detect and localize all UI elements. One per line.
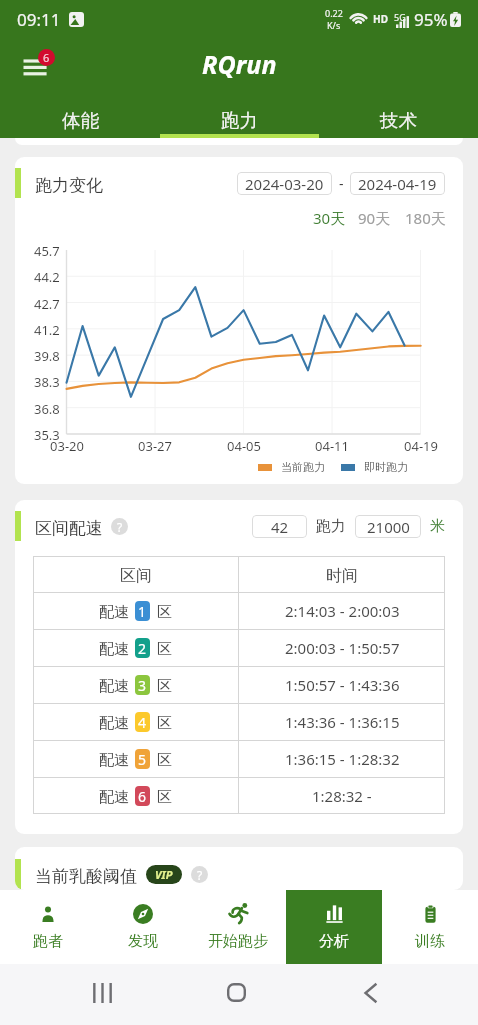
button[interactable]: 开始跑步 — [190, 890, 286, 964]
staticText: 2:00:03 - 1:50:57 — [285, 638, 400, 658]
staticText: 1:28:32 - — [312, 786, 372, 806]
staticText: 区 — [157, 751, 172, 770]
button[interactable]: 21000 — [355, 515, 421, 538]
staticText: - — [339, 174, 344, 193]
staticText: 1:36:15 - 1:28:32 — [285, 749, 400, 769]
button[interactable]: Menu — [14, 48, 60, 88]
staticText: 1:50:57 - 1:43:36 — [285, 675, 400, 695]
staticText: 米 — [430, 517, 445, 536]
staticText: 配速 — [99, 603, 129, 622]
button[interactable]: 跑力 — [160, 97, 319, 138]
button[interactable]: 技术 — [319, 97, 478, 138]
staticText: 当前乳酸阈值 — [35, 866, 137, 887]
staticText: 2024-03-20 — [245, 174, 324, 194]
button[interactable]: 42 — [252, 515, 307, 538]
staticText: 95% — [414, 8, 448, 31]
staticText: 4 — [138, 713, 147, 732]
staticText: 1 — [138, 602, 147, 621]
button[interactable]: 配速 — [33, 630, 445, 666]
staticText: 区间配速 — [35, 518, 103, 539]
staticText: 配速 — [99, 714, 129, 733]
button[interactable]: 发现 — [95, 890, 190, 964]
staticText: 2:14:03 - 2:00:03 — [285, 601, 400, 621]
staticText: 36.8 — [34, 400, 60, 418]
staticText: 配速 — [99, 788, 129, 807]
button[interactable]: 配速 — [33, 593, 445, 629]
staticText: 5G — [394, 11, 406, 23]
staticText: 09:11 — [17, 8, 61, 31]
staticText: 区 — [157, 714, 172, 733]
button[interactable]: Help — [191, 866, 208, 883]
button[interactable]: 体能 — [0, 97, 160, 138]
staticText: 跑者 — [33, 932, 63, 951]
staticText: 35.3 — [34, 426, 60, 444]
staticText: 6 — [43, 50, 50, 65]
staticText: 2 — [138, 639, 147, 658]
staticText: 3 — [138, 676, 147, 695]
staticText: 1:43:36 - 1:36:15 — [285, 712, 400, 732]
staticText: 2024-04-19 — [358, 174, 437, 194]
staticText: 配速 — [99, 640, 129, 659]
staticText: 39.8 — [34, 347, 60, 365]
staticText: 6 — [138, 787, 147, 806]
staticText: 区间 — [120, 566, 152, 586]
staticText: 30天 — [313, 208, 346, 228]
staticText: RQrun — [202, 47, 277, 81]
staticText: 区 — [157, 640, 172, 659]
staticText: 体能 — [62, 109, 99, 132]
staticText: 5 — [138, 750, 147, 769]
staticText: 03-20 — [50, 437, 84, 455]
staticText: 42 — [271, 517, 289, 537]
staticText: HD — [373, 12, 388, 26]
staticText: 开始跑步 — [208, 932, 268, 951]
button[interactable]: 配速 — [33, 667, 445, 703]
staticText: 跑力 — [221, 109, 258, 132]
staticText: 44.2 — [34, 268, 60, 286]
staticText: 04-05 — [227, 437, 261, 455]
staticText: 04-19 — [404, 437, 438, 455]
staticText: 区 — [157, 603, 172, 622]
button[interactable]: 分析 — [286, 890, 382, 964]
staticText: 90天 — [358, 208, 391, 228]
staticText: K/s — [327, 19, 341, 31]
staticText: 配速 — [99, 751, 129, 770]
staticText: 04-11 — [315, 437, 349, 455]
staticText: ? — [197, 867, 203, 883]
staticText: 即时跑力 — [364, 460, 408, 474]
button[interactable]: Help — [111, 518, 128, 535]
staticText: 区 — [157, 677, 172, 696]
staticText: 跑力 — [316, 517, 346, 536]
staticText: 训练 — [415, 932, 445, 951]
staticText: 45.7 — [34, 242, 60, 260]
staticText: 区 — [157, 788, 172, 807]
button[interactable]: 2024-03-20 — [237, 172, 332, 195]
staticText: 分析 — [319, 932, 349, 951]
staticText: 41.2 — [34, 321, 60, 339]
staticText: 0.22 — [325, 7, 343, 19]
staticText: 180天 — [405, 208, 446, 228]
staticText: 配速 — [99, 677, 129, 696]
staticText: 当前跑力 — [281, 460, 325, 474]
staticText: 时间 — [326, 566, 358, 586]
staticText: 38.3 — [34, 373, 60, 391]
staticText: 技术 — [380, 109, 417, 132]
button[interactable]: 2024-04-19 — [350, 172, 445, 195]
button[interactable]: Recents — [91, 983, 114, 1003]
staticText: VIP — [155, 867, 173, 882]
button[interactable]: 区间 — [33, 556, 445, 592]
button[interactable]: Home — [227, 983, 246, 1002]
button[interactable]: 配速 — [33, 778, 445, 814]
button[interactable]: 配速 — [33, 704, 445, 740]
staticText: 跑力变化 — [35, 175, 103, 196]
staticText: 42.7 — [34, 295, 60, 313]
button[interactable]: 跑者 — [0, 890, 95, 964]
staticText: 发现 — [128, 932, 158, 951]
button[interactable]: 配速 — [33, 741, 445, 777]
button[interactable]: 训练 — [382, 890, 478, 964]
staticText: 21000 — [367, 517, 410, 537]
staticText: ? — [117, 519, 123, 535]
staticText: 03-27 — [138, 437, 172, 455]
button[interactable]: Back — [364, 983, 377, 1003]
